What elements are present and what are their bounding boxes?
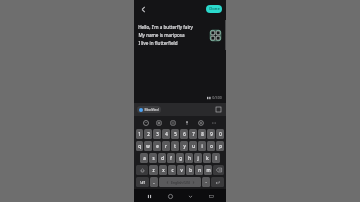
button[interactable]: u: [189, 141, 197, 151]
button[interactable]: !#1: [136, 177, 149, 187]
button[interactable]: Shift: [136, 165, 148, 175]
button[interactable]: x: [159, 165, 167, 175]
staticText: !#1: [140, 180, 146, 185]
staticText: e: [156, 143, 159, 149]
staticText: 0/300: [212, 95, 222, 100]
button[interactable]: Enter: [211, 177, 224, 187]
button[interactable]: English (US): [159, 177, 201, 187]
button[interactable]: y: [180, 141, 188, 151]
button[interactable]: Tool 4: [183, 119, 191, 127]
button[interactable]: 0: [216, 129, 224, 139]
staticText: ,: [153, 179, 155, 185]
button[interactable]: 8: [198, 129, 206, 139]
button[interactable]: 6: [180, 129, 188, 139]
button[interactable]: q: [136, 141, 143, 151]
staticText: r: [165, 143, 167, 149]
button[interactable]: Back: [137, 3, 149, 15]
staticText: o: [210, 143, 213, 149]
button[interactable]: t: [171, 141, 179, 151]
staticText: 7: [192, 131, 195, 137]
button[interactable]: m: [204, 165, 212, 175]
button[interactable]: Scan: [210, 30, 221, 41]
button[interactable]: Home: [165, 191, 175, 201]
button[interactable]: j: [194, 153, 202, 163]
staticText: 3: [156, 131, 159, 137]
button[interactable]: 5: [171, 129, 179, 139]
staticText: l: [215, 155, 217, 161]
staticText: v: [180, 167, 183, 173]
staticText: m: [206, 167, 211, 173]
staticText: Done: [209, 6, 220, 12]
button[interactable]: Tool 3: [169, 119, 177, 127]
staticText: 0: [219, 131, 222, 137]
button[interactable]: g: [176, 153, 184, 163]
button[interactable]: Modified: [137, 106, 161, 113]
staticText: p: [219, 143, 222, 149]
staticText: English (US): [171, 180, 190, 185]
button[interactable]: More options: [210, 119, 218, 127]
button[interactable]: f: [167, 153, 175, 163]
button[interactable]: 3: [153, 129, 161, 139]
staticText: s: [152, 155, 155, 161]
button[interactable]: 9: [207, 129, 215, 139]
staticText: 1: [138, 131, 141, 137]
staticText: q: [138, 143, 141, 149]
button[interactable]: z: [149, 165, 158, 175]
button[interactable]: w: [144, 141, 152, 151]
staticText: b: [189, 167, 192, 173]
button[interactable]: c: [168, 165, 176, 175]
button[interactable]: Tool 2: [155, 119, 163, 127]
staticText: .: [205, 179, 207, 185]
staticText: 5: [174, 131, 177, 137]
button[interactable]: Tool 5: [197, 119, 205, 127]
button[interactable]: Hello, I'm a butterfly fairy: [138, 24, 220, 46]
staticText: 9: [210, 131, 213, 137]
staticText: w: [146, 143, 150, 149]
staticText: d: [161, 155, 164, 161]
staticText: x: [162, 167, 165, 173]
button[interactable]: .: [202, 177, 210, 187]
button[interactable]: h: [185, 153, 193, 163]
button[interactable]: d: [158, 153, 166, 163]
button[interactable]: 7: [189, 129, 197, 139]
staticText: u: [192, 143, 195, 149]
button[interactable]: ,: [150, 177, 158, 187]
button[interactable]: p: [216, 141, 224, 151]
button[interactable]: Tool 1: [142, 119, 150, 127]
button[interactable]: Backspace: [213, 165, 224, 175]
staticText: Hello, I'm a butterfly fairy: [138, 24, 193, 30]
button[interactable]: v: [177, 165, 185, 175]
staticText: y: [183, 143, 186, 149]
staticText: 6: [183, 131, 186, 137]
staticText: My name is mariposa: [138, 32, 185, 38]
button[interactable]: 2: [144, 129, 152, 139]
button[interactable]: Keyboard layout: [206, 191, 216, 201]
staticText: n: [198, 167, 201, 173]
button[interactable]: r: [162, 141, 170, 151]
button[interactable]: i: [198, 141, 206, 151]
button[interactable]: Done: [206, 5, 222, 13]
button[interactable]: k: [203, 153, 211, 163]
button[interactable]: a: [140, 153, 148, 163]
button[interactable]: l: [212, 153, 220, 163]
button[interactable]: Clipboard: [215, 106, 222, 113]
button[interactable]: 1: [136, 129, 143, 139]
staticText: h: [188, 155, 191, 161]
staticText: f: [170, 155, 172, 161]
staticText: g: [179, 155, 182, 161]
staticText: Modified: [144, 107, 159, 112]
button[interactable]: o: [207, 141, 215, 151]
button[interactable]: Hide keyboard: [185, 191, 195, 201]
staticText: z: [152, 167, 155, 173]
staticText: i: [201, 143, 203, 149]
staticText: I live in flutterfield: [138, 40, 178, 46]
button[interactable]: n: [195, 165, 203, 175]
button[interactable]: b: [186, 165, 194, 175]
staticText: j: [197, 155, 199, 161]
staticText: t: [174, 143, 176, 149]
button[interactable]: 4: [162, 129, 170, 139]
staticText: a: [143, 155, 146, 161]
button[interactable]: e: [153, 141, 161, 151]
button[interactable]: s: [149, 153, 157, 163]
button[interactable]: Recents: [144, 191, 154, 201]
